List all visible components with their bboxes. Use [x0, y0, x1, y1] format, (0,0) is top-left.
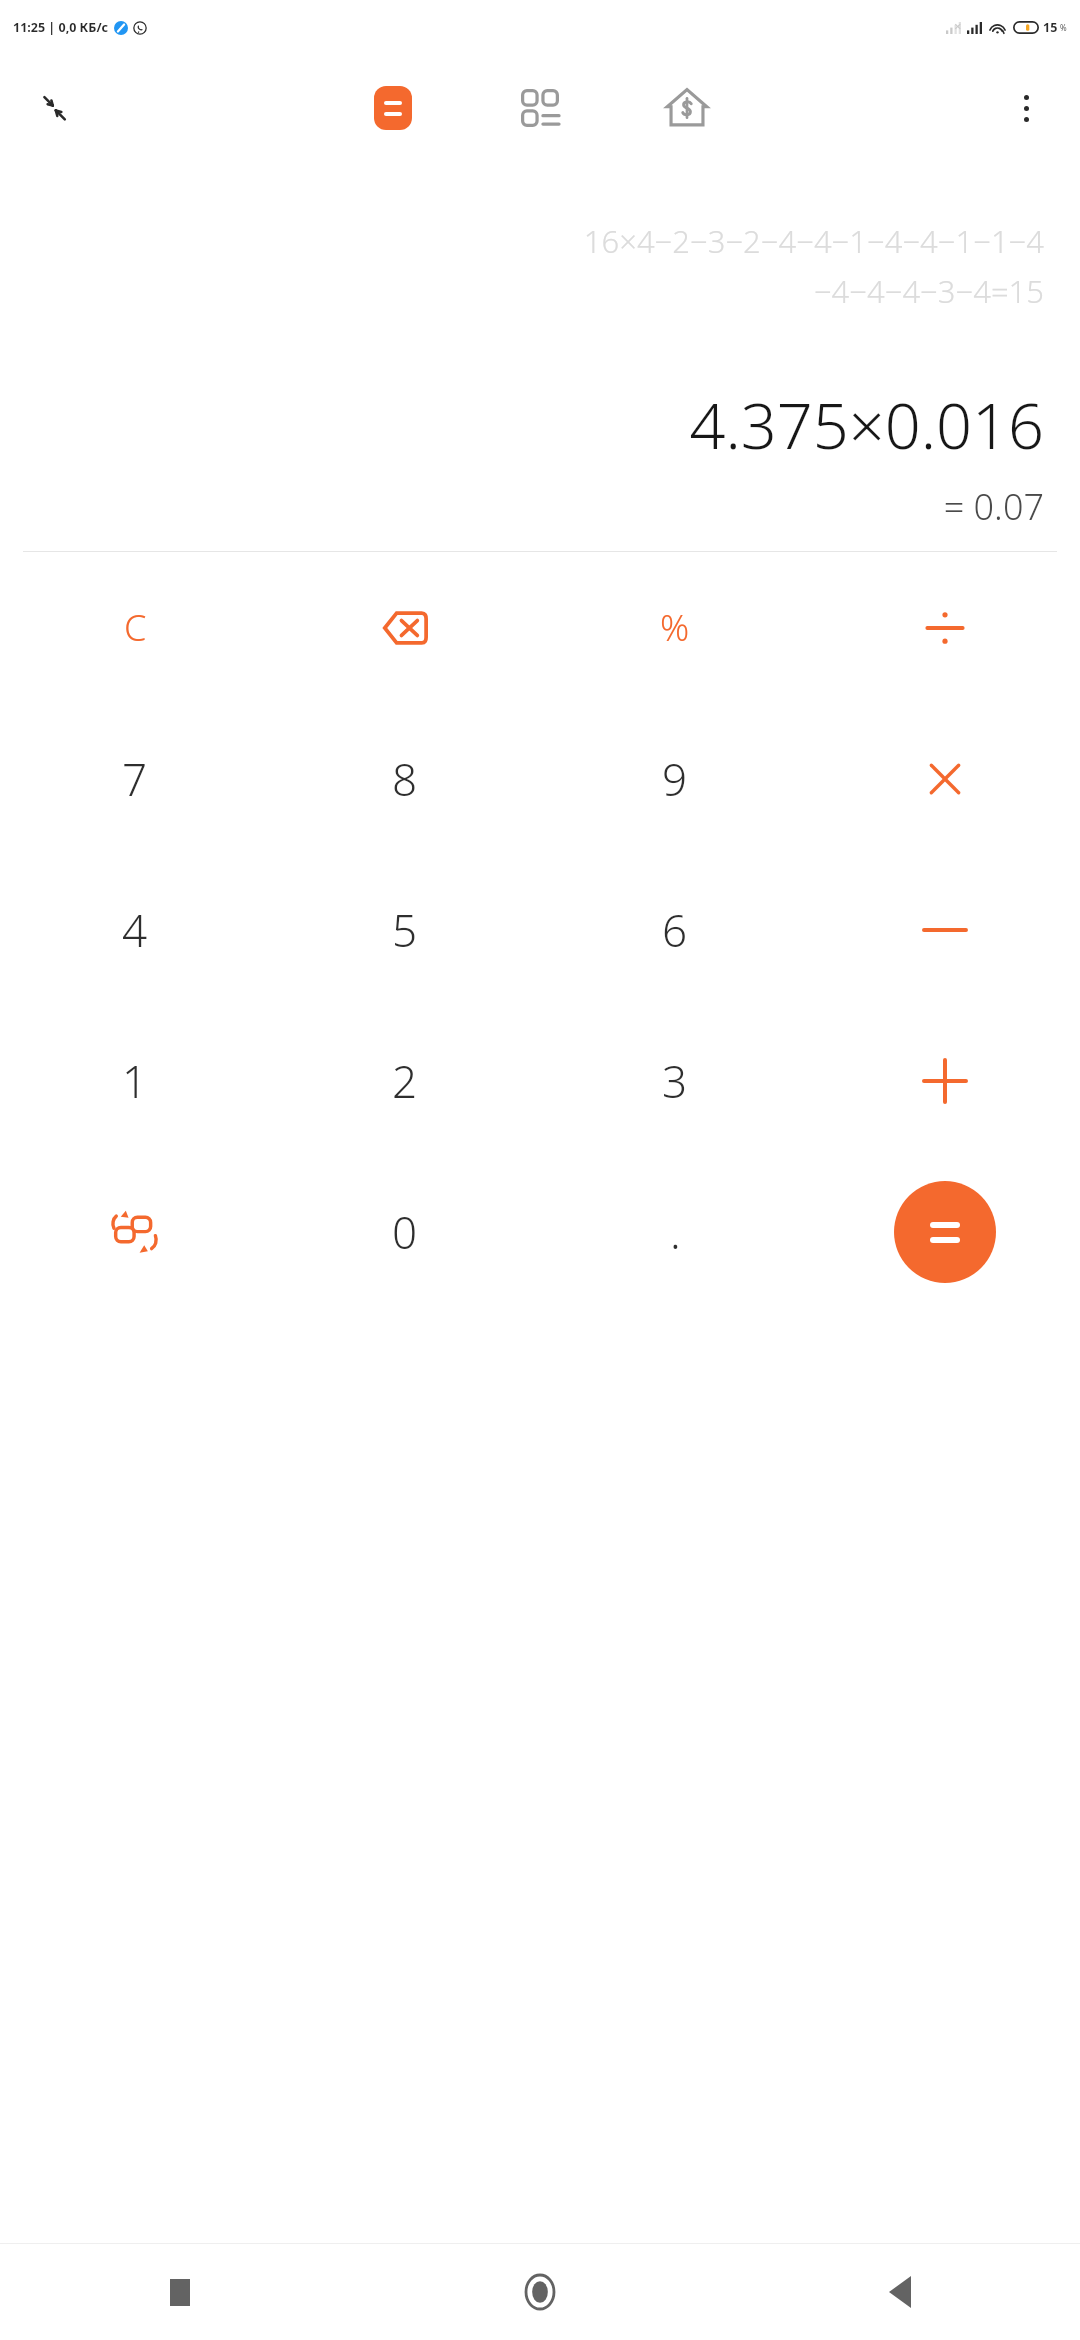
button[interactable]: Convert	[0, 1156, 270, 1307]
button[interactable]: Mortgage	[655, 76, 719, 140]
staticText: 7	[122, 749, 148, 809]
button[interactable]	[810, 1005, 1080, 1156]
button[interactable]: 1	[0, 1005, 270, 1156]
staticText: 4	[122, 900, 148, 960]
staticText: 16×4−2−3−2−4−4−1−4−4−1−1−4	[36, 220, 1044, 262]
staticText: = 0.07	[36, 482, 1044, 531]
button[interactable]: 8	[270, 703, 540, 854]
staticText: 11:25 | 0,0 КБ/с	[13, 19, 109, 36]
staticText: %	[1060, 22, 1067, 33]
button[interactable]: More options	[1000, 82, 1052, 134]
staticText: 0	[392, 1202, 418, 1262]
button[interactable]: Equals	[894, 1181, 996, 1283]
button[interactable]: 7	[0, 703, 270, 854]
button[interactable]	[810, 703, 1080, 854]
button[interactable]: Collapse	[28, 82, 80, 134]
button[interactable]: 2	[270, 1005, 540, 1156]
staticText: 3	[662, 1051, 688, 1111]
button[interactable]: 5	[270, 854, 540, 1005]
staticText: −4−4−4−3−4=15	[36, 270, 1044, 312]
button[interactable]: C	[0, 552, 270, 703]
button[interactable]: 6	[540, 854, 810, 1005]
button[interactable]: Backspace	[270, 552, 540, 703]
button[interactable]: 0	[270, 1156, 540, 1307]
button[interactable]: 4	[0, 854, 270, 1005]
button[interactable]	[810, 854, 1080, 1005]
button[interactable]: Back	[720, 2244, 1080, 2340]
button[interactable]	[810, 552, 1080, 703]
staticText: %	[660, 603, 690, 652]
staticText: 1	[122, 1051, 148, 1111]
staticText: 15	[1043, 19, 1058, 36]
staticText: .	[670, 1202, 681, 1262]
staticText: 8	[392, 749, 418, 809]
staticText: 5	[392, 900, 418, 960]
staticText: 6	[662, 900, 688, 960]
button[interactable]: Converter	[508, 76, 572, 140]
button[interactable]: Calculator	[361, 76, 425, 140]
button[interactable]: Home	[360, 2244, 720, 2340]
staticText: 4.375×0.016	[36, 382, 1044, 468]
button[interactable]: .	[540, 1156, 810, 1307]
button[interactable]: 9	[540, 703, 810, 854]
button[interactable]: 3	[540, 1005, 810, 1156]
button[interactable]: %	[540, 552, 810, 703]
staticText: C	[124, 603, 147, 652]
staticText: 9	[662, 749, 688, 809]
staticText: 2	[392, 1051, 418, 1111]
button[interactable]: Recents	[0, 2244, 360, 2340]
